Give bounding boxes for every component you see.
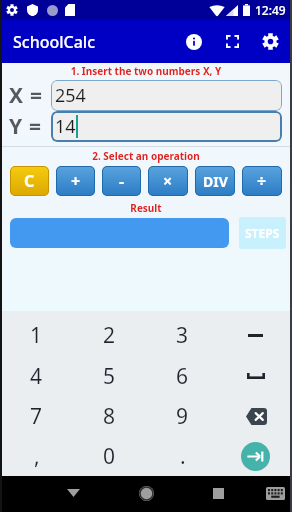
staticText: 1 [30, 321, 43, 350]
staticText: , [34, 442, 40, 471]
button[interactable]: 5 [73, 356, 146, 396]
staticText: 3 [176, 321, 189, 350]
staticText: - [119, 170, 125, 192]
button[interactable]: 0 [73, 436, 146, 476]
staticText: STEPS [245, 225, 280, 241]
staticText: 2 [103, 321, 116, 350]
button[interactable]: 8 [73, 396, 146, 436]
button[interactable]: Recents [203, 478, 233, 508]
button[interactable]: Backspace [239, 402, 273, 430]
button[interactable]: 9 [146, 396, 219, 436]
staticText: 4 [30, 362, 43, 391]
staticText: Result [0, 201, 292, 215]
staticText: 14 [55, 114, 76, 139]
button[interactable]: Settings [251, 20, 289, 63]
button[interactable]: + [56, 166, 95, 196]
staticText: = [29, 112, 42, 141]
staticText: 8 [103, 402, 116, 431]
button[interactable]: 3 [146, 315, 219, 356]
button[interactable]: 2 [73, 315, 146, 356]
button[interactable]: , [0, 436, 73, 476]
staticText: DIV [203, 172, 228, 191]
button[interactable]: 254 [51, 80, 282, 111]
other: Space [247, 373, 265, 379]
staticText: C [24, 170, 35, 192]
staticText: 12:49 [255, 2, 286, 18]
staticText: SchoolCalc [13, 31, 96, 53]
button[interactable]: 14 [51, 111, 282, 142]
staticText: 7 [30, 402, 43, 431]
button[interactable]: - [102, 166, 141, 196]
staticText: 254 [55, 83, 86, 108]
button[interactable] [10, 218, 229, 248]
button[interactable]: 4 [0, 356, 73, 396]
staticText: . [180, 442, 186, 471]
staticText: 6 [176, 362, 189, 391]
staticText: X [9, 81, 24, 110]
button[interactable]: Space [219, 356, 292, 396]
staticText: ÷ [257, 170, 267, 192]
button[interactable]: Minus [219, 315, 292, 356]
staticText: 0 [103, 442, 116, 471]
staticText: × [163, 170, 173, 192]
button[interactable]: Backspace [219, 396, 292, 436]
button[interactable]: DIV [195, 166, 235, 196]
button[interactable]: . [146, 436, 219, 476]
button[interactable]: × [148, 166, 188, 196]
button[interactable]: Keyboard [260, 478, 290, 508]
staticText: 2. Select an operation [0, 149, 292, 163]
button[interactable]: C [10, 166, 49, 196]
button[interactable]: 1 [0, 315, 73, 356]
button[interactable]: Enter [241, 442, 270, 471]
button[interactable]: Info [175, 20, 213, 63]
button[interactable]: STEPS [239, 217, 286, 249]
staticText: 5 [103, 362, 116, 391]
button[interactable]: ÷ [242, 166, 282, 196]
button[interactable]: Enter [219, 436, 292, 476]
button[interactable]: 6 [146, 356, 219, 396]
button[interactable]: Fullscreen [213, 20, 251, 63]
staticText: Y [9, 112, 23, 141]
button[interactable]: 7 [0, 396, 73, 436]
button[interactable]: Home [131, 478, 161, 508]
staticText: = [30, 81, 43, 110]
button[interactable]: Back [58, 478, 88, 508]
staticText: 9 [176, 402, 189, 431]
staticText: 1. Insert the two numbers X, Y [0, 64, 292, 78]
staticText: + [71, 170, 81, 192]
